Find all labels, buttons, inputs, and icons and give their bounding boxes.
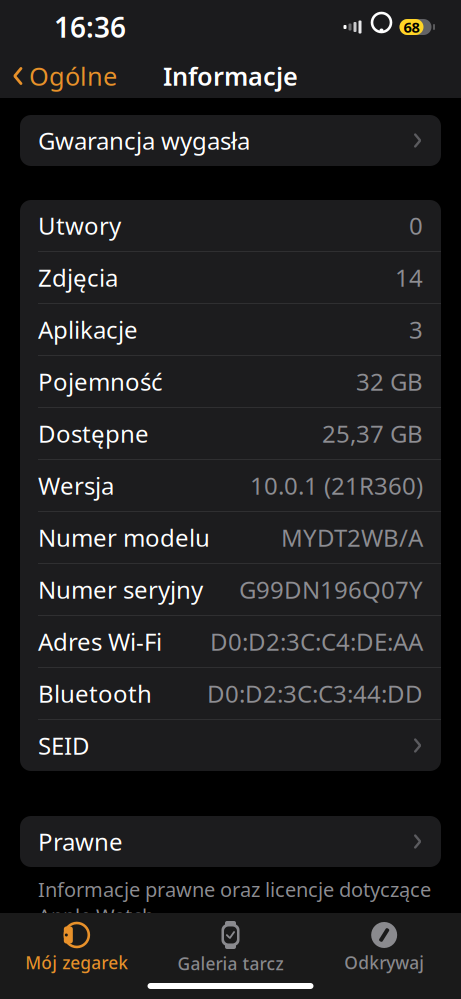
staticText: 10.0.1 (21R360): [250, 470, 423, 501]
staticText: Mój zegarek: [25, 951, 128, 974]
staticText: Utwory: [38, 210, 121, 241]
staticText: 3: [409, 314, 423, 345]
staticText: Galeria tarcz: [177, 952, 283, 975]
button[interactable]: Mój zegarek: [0, 914, 154, 974]
staticText: Pojemność: [38, 366, 163, 397]
staticText: 14: [395, 262, 423, 293]
staticText: SEID: [38, 730, 90, 761]
staticText: Informacje: [163, 59, 298, 93]
staticText: Wersja: [38, 470, 114, 501]
staticText: MYDT2WB/A: [281, 522, 423, 553]
staticText: Dostępne: [38, 418, 149, 449]
button[interactable]: Gwarancja wygasła: [20, 115, 441, 166]
staticText: 16:36: [54, 8, 126, 46]
staticText: Bluetooth: [38, 678, 152, 709]
button[interactable]: Galeria tarcz: [154, 913, 307, 975]
staticText: Numer modelu: [38, 522, 210, 553]
staticText: Ogólne: [29, 59, 117, 93]
staticText: Gwarancja wygasła: [38, 125, 250, 156]
staticText: Numer seryjny: [38, 574, 203, 605]
staticText: Adres Wi-Fi: [38, 626, 162, 657]
button[interactable]: SEID: [20, 720, 441, 771]
staticText: Prawne: [38, 826, 123, 857]
staticText: Informacje prawne oraz licencje dotycząc…: [38, 876, 431, 929]
staticText: D0:D2:3C:C4:DE:AA: [210, 626, 423, 657]
button[interactable]: Ogólne: [0, 54, 127, 98]
staticText: Zdjęcia: [38, 262, 118, 293]
staticText: Aplikacje: [38, 314, 138, 345]
staticText: Odkrywaj: [344, 951, 424, 974]
staticText: 25,37 GB: [322, 418, 423, 449]
button[interactable]: Prawne: [20, 816, 441, 867]
staticText: D0:D2:3C:C3:44:DD: [207, 678, 423, 709]
button[interactable]: Odkrywaj: [307, 914, 461, 974]
staticText: 68: [403, 17, 419, 37]
staticText: 0: [409, 210, 423, 241]
staticText: 32 GB: [356, 366, 423, 397]
staticText: G99DN196Q07Y: [239, 574, 423, 605]
